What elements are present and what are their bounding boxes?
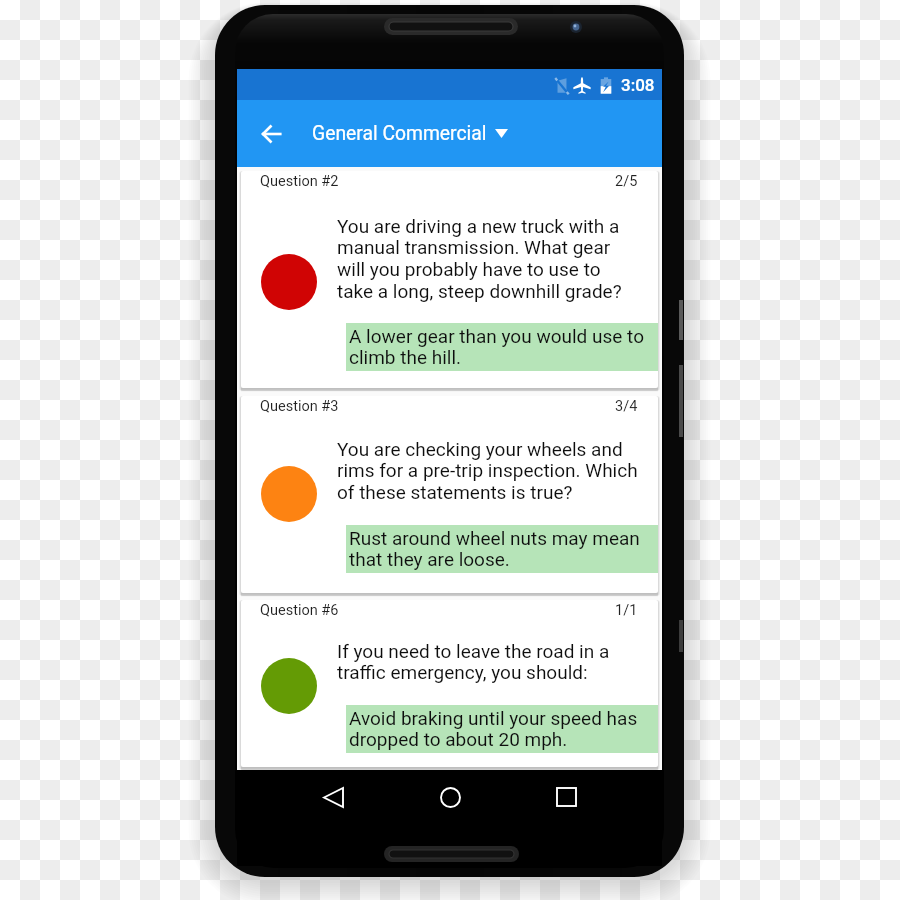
button[interactable]: Question #3 [241,396,658,593]
button[interactable]: Question #6 [241,600,658,767]
staticText: You are checking your wheels and rims fo… [337,438,640,504]
staticText: Rust around wheel nuts may mean that the… [349,527,655,571]
staticText: General Commercial [312,122,487,145]
staticText: Question #6 [260,602,339,619]
button[interactable]: Home [427,774,473,820]
staticText: 2/5 [615,173,638,190]
button[interactable]: Recent apps [543,774,589,820]
staticText: Question #3 [260,398,339,415]
button[interactable]: Back [310,774,356,820]
staticText: 1/1 [615,602,638,619]
button[interactable]: Back [248,110,296,158]
staticText: 3:08 [621,75,655,95]
button[interactable]: General Commercial [312,122,508,145]
staticText: You are driving a new truck with a manua… [337,215,640,303]
staticText: Question #2 [260,173,339,190]
staticText: If you need to leave the road in a traff… [337,640,640,684]
staticText: A lower gear than you would use to climb… [349,325,655,369]
staticText: Avoid braking until your speed has dropp… [349,707,655,751]
button[interactable]: Question #2 [241,171,658,388]
staticText: 3/4 [615,398,638,415]
